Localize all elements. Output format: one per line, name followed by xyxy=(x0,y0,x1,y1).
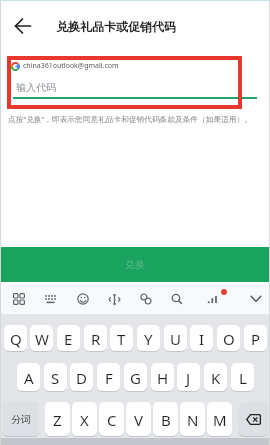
button[interactable] xyxy=(38,286,62,312)
button[interactable] xyxy=(134,286,158,312)
button[interactable]: X xyxy=(72,402,97,437)
staticText: Y xyxy=(144,329,153,349)
button[interactable]: 兑换礼品卡或促销代码 xyxy=(0,0,270,48)
staticText: X xyxy=(80,410,89,430)
staticText: I xyxy=(199,329,205,349)
staticText: R xyxy=(91,329,101,349)
staticText: M xyxy=(213,410,227,430)
staticText: 分词 xyxy=(11,413,31,426)
staticText: 点按“兑换”，即表示您同意礼品卡和促销代码条款及条件（如果适用）。 xyxy=(8,114,252,125)
button[interactable]: Y xyxy=(137,325,160,352)
button[interactable]: T xyxy=(110,325,133,352)
staticText: J xyxy=(186,368,191,388)
staticText: G xyxy=(130,368,141,388)
staticText: F xyxy=(105,368,113,388)
button[interactable]: 兑换 xyxy=(0,247,270,282)
button[interactable] xyxy=(7,286,31,312)
staticText: H xyxy=(157,368,169,388)
staticText: Z xyxy=(53,410,62,430)
button[interactable]: V xyxy=(126,402,151,437)
button[interactable]: A xyxy=(17,363,40,392)
button[interactable]: R xyxy=(84,325,107,352)
staticText: china361outlook@gmail.com xyxy=(23,61,119,71)
button[interactable] xyxy=(102,286,126,312)
staticText: P xyxy=(251,329,261,349)
button[interactable]: J xyxy=(177,363,200,392)
staticText: Q xyxy=(10,329,22,349)
staticText: C xyxy=(107,410,117,430)
staticText: N xyxy=(187,410,199,430)
button[interactable] xyxy=(165,286,189,312)
staticText: U xyxy=(170,329,181,349)
button[interactable]: E xyxy=(57,325,80,352)
button[interactable]: L xyxy=(231,363,254,392)
staticText: T xyxy=(117,329,126,349)
button[interactable] xyxy=(71,286,95,312)
button[interactable] xyxy=(244,286,268,312)
button[interactable]: Q xyxy=(4,325,27,352)
staticText: S xyxy=(51,368,60,388)
button[interactable]: K xyxy=(204,363,227,392)
button[interactable]: G xyxy=(124,363,147,392)
button[interactable]: F xyxy=(97,363,120,392)
staticText: A xyxy=(24,368,34,388)
button[interactable]: S xyxy=(44,363,67,392)
staticText: 兑换 xyxy=(125,258,145,271)
button[interactable]: Z xyxy=(45,402,70,437)
button[interactable]: 输入代码 xyxy=(13,78,257,97)
button[interactable]: W xyxy=(30,325,53,352)
staticText: L xyxy=(239,368,247,388)
button[interactable]: H xyxy=(151,363,174,392)
button[interactable]: M xyxy=(207,402,232,437)
staticText: V xyxy=(134,410,144,430)
staticText: 兑换礼品卡或促销代码 xyxy=(56,19,176,34)
staticText: 输入代码 xyxy=(16,81,56,94)
button[interactable]: N xyxy=(180,402,205,437)
button[interactable]: P xyxy=(244,325,267,352)
staticText: O xyxy=(223,329,235,349)
button[interactable]: U xyxy=(164,325,187,352)
button[interactable]: C xyxy=(99,402,124,437)
staticText: W xyxy=(35,329,49,349)
staticText: K xyxy=(211,368,221,388)
button[interactable]: D xyxy=(70,363,93,392)
staticText: E xyxy=(64,329,73,349)
button[interactable] xyxy=(239,402,268,437)
staticText: B xyxy=(161,410,171,430)
button[interactable] xyxy=(201,286,225,312)
staticText: D xyxy=(76,368,87,388)
button[interactable]: 分词 xyxy=(2,402,39,437)
button[interactable]: B xyxy=(153,402,178,437)
button[interactable]: I xyxy=(190,325,213,352)
button[interactable]: O xyxy=(217,325,240,352)
